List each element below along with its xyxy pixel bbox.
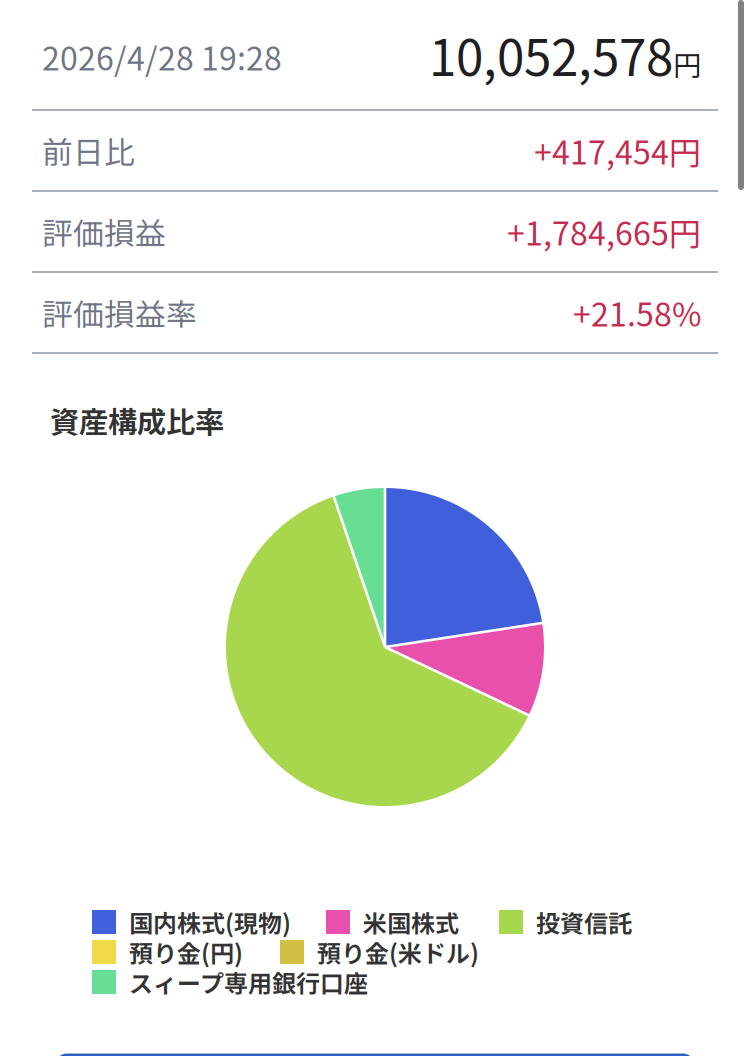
button[interactable] bbox=[57, 1055, 693, 1056]
staticText: +21.58% bbox=[573, 289, 701, 336]
staticText: 預り金(米ドル) bbox=[317, 935, 479, 969]
staticText: スィープ専用銀行口座 bbox=[129, 965, 368, 999]
staticText: 評価損益 bbox=[42, 209, 166, 254]
staticText: 預り金(円) bbox=[129, 935, 243, 969]
staticText: +1,784,665円 bbox=[507, 208, 701, 255]
staticText: +417,454円 bbox=[534, 127, 701, 174]
staticText: 米国株式 bbox=[363, 905, 459, 939]
staticText: 投資信託 bbox=[536, 905, 632, 939]
staticText: 資産構成比率 bbox=[50, 399, 224, 441]
staticText: 10,052,578 bbox=[429, 19, 673, 90]
staticText: 2026/4/28 19:28 bbox=[42, 33, 282, 80]
staticText: 前日比 bbox=[42, 128, 135, 173]
staticText: 国内株式(現物) bbox=[129, 905, 291, 939]
staticText: 評価損益率 bbox=[42, 290, 197, 335]
staticText: 円 bbox=[673, 43, 701, 84]
